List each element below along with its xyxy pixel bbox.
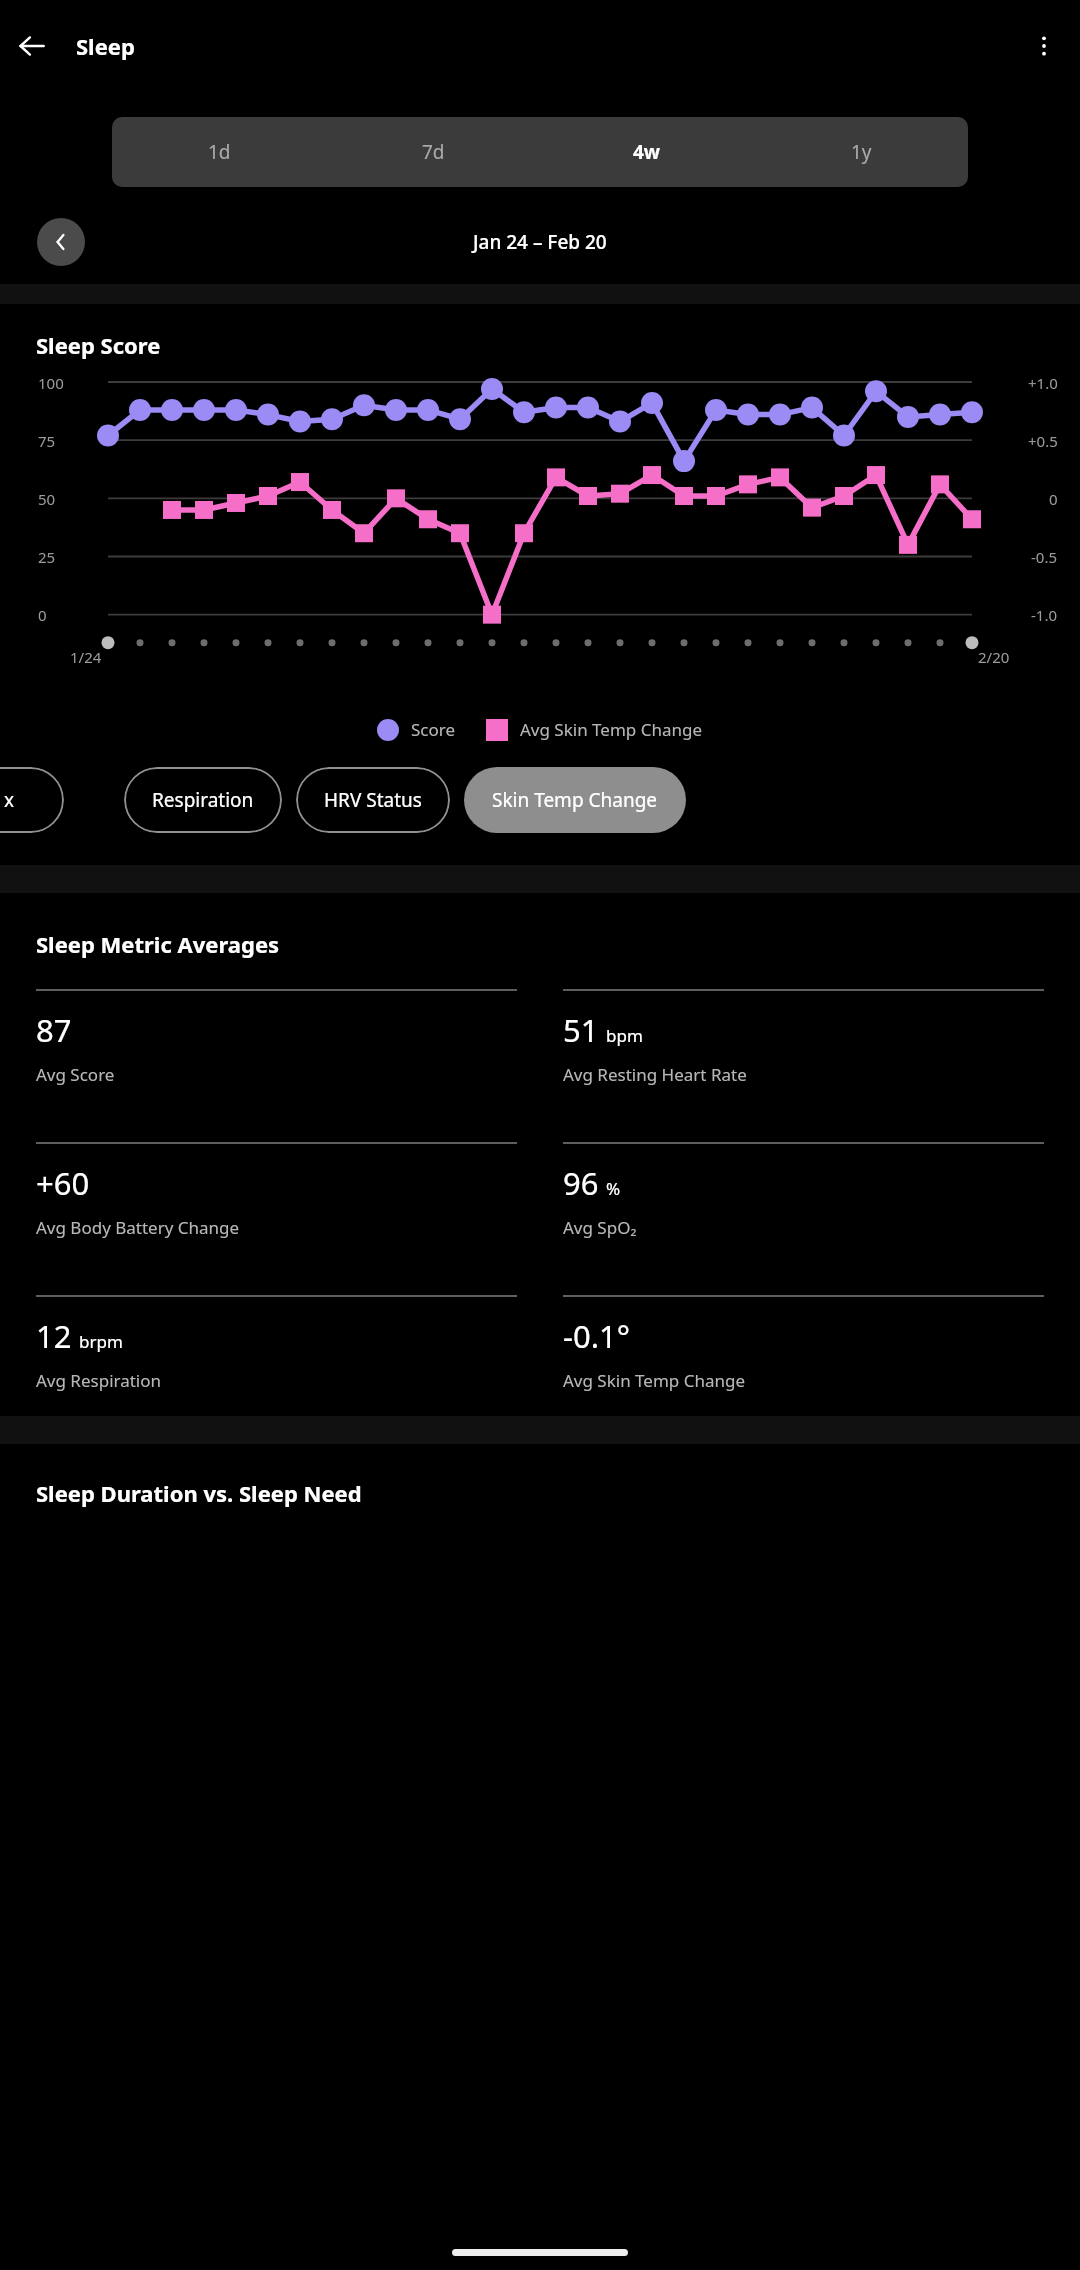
staticText: 0 <box>38 605 47 625</box>
staticText: Avg Respiration <box>36 1369 162 1392</box>
staticText: brpm <box>79 1330 123 1353</box>
staticText: -0.5 <box>1031 547 1058 567</box>
button[interactable]: 1y <box>754 117 968 187</box>
staticText: Sleep Score <box>36 330 161 360</box>
staticText: 51 <box>563 1009 599 1051</box>
staticText: +0.5 <box>1028 431 1058 451</box>
staticText: 96 <box>563 1162 599 1204</box>
staticText: 12 <box>36 1315 72 1357</box>
staticText: 0 <box>1049 489 1058 509</box>
staticText: Avg Skin Temp Change <box>563 1369 746 1392</box>
staticText: Score <box>411 718 456 741</box>
button[interactable]: Previous <box>37 218 85 266</box>
staticText: -1.0 <box>1031 605 1058 625</box>
button[interactable]: x <box>0 767 64 833</box>
button[interactable]: HRV Status <box>296 767 450 833</box>
staticText: Skin Temp Change <box>492 787 658 813</box>
staticText: Avg Resting Heart Rate <box>563 1063 747 1086</box>
button[interactable]: Back <box>6 20 58 72</box>
staticText: 7d <box>422 139 445 165</box>
staticText: Jan 24 – Feb 20 <box>473 229 607 255</box>
button[interactable]: Skin Temp Change <box>464 767 686 833</box>
staticText: Respiration <box>152 787 254 813</box>
staticText: Avg SpO₂ <box>563 1216 637 1239</box>
staticText: HRV Status <box>324 787 422 813</box>
button[interactable]: 4w <box>540 117 754 187</box>
staticText: Avg Body Battery Change <box>36 1216 240 1239</box>
staticText: Sleep <box>76 31 135 61</box>
staticText: 100 <box>38 373 64 393</box>
staticText: x <box>4 787 15 813</box>
staticText: -0.1° <box>563 1315 631 1357</box>
staticText: 2/20 <box>978 647 1010 667</box>
staticText: Sleep Metric Averages <box>36 929 280 959</box>
staticText: 1/24 <box>70 647 102 667</box>
staticText: +1.0 <box>1028 373 1058 393</box>
button[interactable]: More options <box>1018 20 1070 72</box>
staticText: 1y <box>851 139 872 165</box>
staticText: % <box>606 1177 621 1200</box>
button[interactable]: Respiration <box>124 767 282 833</box>
staticText: Avg Skin Temp Change <box>520 718 703 741</box>
staticText: Avg Score <box>36 1063 115 1086</box>
staticText: 4w <box>633 139 661 165</box>
staticText: 87 <box>36 1009 72 1051</box>
staticText: 50 <box>38 489 56 509</box>
staticText: Sleep Duration vs. Sleep Need <box>36 1478 362 1508</box>
staticText: 25 <box>38 547 56 567</box>
button[interactable]: 7d <box>326 117 540 187</box>
staticText: 1d <box>208 139 231 165</box>
button[interactable]: 1d <box>112 117 326 187</box>
staticText: +60 <box>36 1162 90 1204</box>
staticText: bpm <box>606 1024 643 1047</box>
staticText: 75 <box>38 431 56 451</box>
